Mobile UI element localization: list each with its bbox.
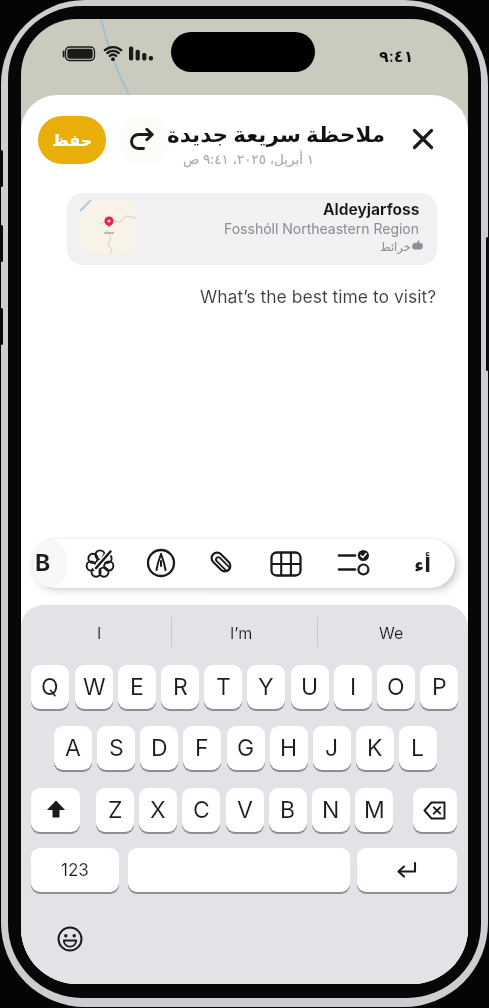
- button[interactable]: [119, 115, 169, 165]
- staticText: V: [237, 796, 253, 824]
- button[interactable]: [205, 546, 237, 578]
- staticText: Z: [108, 796, 123, 824]
- staticText: G: [237, 734, 255, 762]
- button[interactable]: Q: [31, 665, 69, 709]
- button[interactable]: G: [227, 726, 265, 770]
- button[interactable]: L: [399, 726, 437, 770]
- staticText: W: [83, 673, 106, 701]
- button[interactable]: [357, 848, 457, 892]
- button[interactable]: O: [377, 665, 415, 709]
- button[interactable]: J: [313, 726, 351, 770]
- button[interactable]: Z: [96, 788, 134, 832]
- staticText: H: [280, 734, 298, 762]
- staticText: L: [411, 734, 425, 762]
- staticText: I: [350, 673, 357, 701]
- button[interactable]: أء: [406, 547, 440, 581]
- button[interactable]: حفظ: [38, 116, 106, 164]
- staticText: D: [151, 734, 168, 762]
- staticText: أء: [414, 553, 432, 576]
- button[interactable]: [270, 548, 302, 580]
- staticText: E: [130, 673, 144, 701]
- button[interactable]: X: [139, 788, 177, 832]
- staticText: N: [322, 796, 340, 824]
- staticText: C: [193, 796, 210, 824]
- staticText: J: [325, 734, 339, 762]
- button[interactable]: I’m: [201, 614, 281, 650]
- button[interactable]: [33, 540, 66, 587]
- button[interactable]: [128, 848, 350, 892]
- staticText: M: [364, 796, 385, 824]
- button[interactable]: C: [182, 788, 220, 832]
- button[interactable]: N: [312, 788, 350, 832]
- staticText: S: [109, 734, 124, 762]
- button[interactable]: D: [140, 726, 178, 770]
- staticText: ملاحظة سريعة جديدة: [167, 121, 386, 147]
- button[interactable]: [399, 115, 447, 163]
- staticText: B: [280, 796, 296, 824]
- staticText: Y: [258, 673, 274, 701]
- staticText: T: [216, 673, 231, 701]
- staticText: What’s the best time to visit?: [200, 286, 437, 307]
- button[interactable]: F: [183, 726, 221, 770]
- button[interactable]: M: [355, 788, 393, 832]
- staticText: ١ أبريل، ٢٠٢٥، ٩:٤١ ص: [183, 151, 315, 167]
- staticText: حفظ: [52, 131, 93, 150]
- staticText: O: [387, 673, 405, 701]
- button[interactable]: T: [204, 665, 242, 709]
- button[interactable]: B: [269, 788, 307, 832]
- button[interactable]: [145, 547, 177, 579]
- staticText: We: [379, 623, 404, 642]
- staticText: I’m: [230, 623, 253, 642]
- staticText: Fosshóll Northeastern Region: [224, 220, 420, 237]
- button[interactable]: H: [270, 726, 308, 770]
- button[interactable]: K: [356, 726, 394, 770]
- button[interactable]: [84, 548, 116, 580]
- button[interactable]: V: [226, 788, 264, 832]
- staticText: F: [195, 734, 209, 762]
- button[interactable]: S: [97, 726, 135, 770]
- button[interactable]: Aldeyjarfoss: [67, 193, 437, 265]
- button[interactable]: We: [351, 614, 431, 650]
- button[interactable]: E: [118, 665, 156, 709]
- button[interactable]: P: [420, 665, 458, 709]
- button[interactable]: R: [161, 665, 199, 709]
- staticText: U: [301, 673, 319, 701]
- staticText: خرائط: [380, 240, 411, 253]
- button[interactable]: U: [291, 665, 329, 709]
- button[interactable]: W: [75, 665, 113, 709]
- button[interactable]: [338, 548, 370, 580]
- staticText: Q: [41, 673, 59, 701]
- button[interactable]: I: [59, 614, 139, 650]
- button[interactable]: [57, 926, 83, 952]
- staticText: ٩:٤١: [379, 46, 414, 65]
- staticText: K: [367, 734, 383, 762]
- staticText: X: [150, 796, 166, 824]
- staticText: A: [65, 734, 81, 762]
- button[interactable]: [31, 788, 80, 832]
- staticText: B: [35, 549, 51, 577]
- button[interactable]: [413, 788, 457, 832]
- staticText: P: [432, 673, 447, 701]
- button[interactable]: Y: [247, 665, 285, 709]
- staticText: 123: [61, 860, 89, 881]
- button[interactable]: I: [334, 665, 372, 709]
- staticText: R: [173, 673, 188, 701]
- staticText: I: [97, 623, 102, 642]
- staticText: Aldeyjarfoss: [323, 200, 420, 219]
- button[interactable]: 123: [31, 848, 119, 892]
- button[interactable]: A: [54, 726, 92, 770]
